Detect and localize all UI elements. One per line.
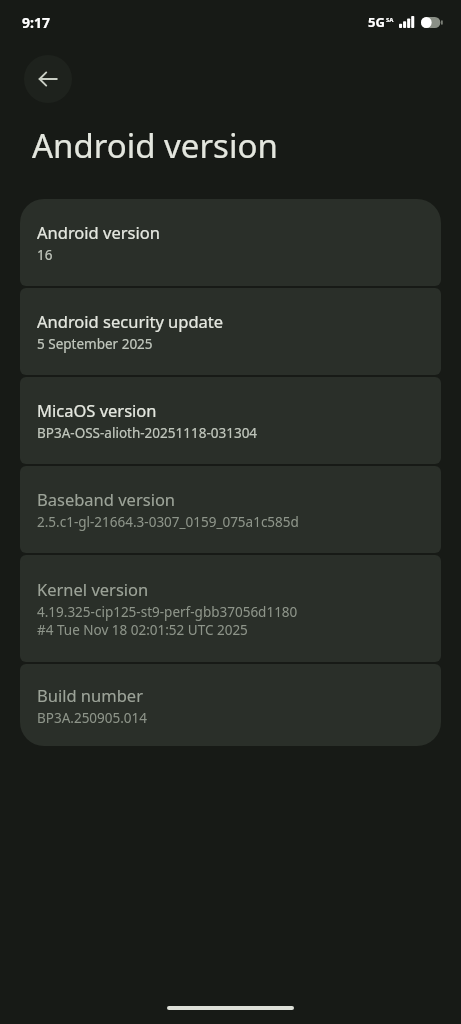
staticText: Android version <box>37 221 160 243</box>
staticText: 4.19.325-cip125-st9-perf-gbb37056d1180 <box>37 603 298 621</box>
button[interactable]: Android version <box>20 199 441 286</box>
staticText: Kernel version <box>37 578 149 600</box>
staticText: Build number <box>37 684 143 706</box>
button[interactable]: Baseband version <box>20 466 441 553</box>
staticText: BP3A-OSS-alioth-20251118-031304 <box>37 424 258 442</box>
staticText: SA <box>386 16 394 24</box>
staticText: #4 Tue Nov 18 02:01:52 UTC 2025 <box>37 621 248 639</box>
staticText: 5 September 2025 <box>37 335 153 353</box>
staticText: 2.5.c1-gl-21664.3-0307_0159_075a1c585d <box>37 513 299 531</box>
staticText: Android version <box>32 123 278 168</box>
staticText: 16 <box>37 246 53 264</box>
button[interactable]: MicaOS version <box>20 377 441 464</box>
staticText: MicaOS version <box>37 399 157 421</box>
staticText: 5G <box>368 13 385 31</box>
staticText: BP3A.250905.014 <box>37 709 148 727</box>
staticText: Android security update <box>37 310 224 332</box>
button[interactable]: Build number <box>20 664 441 746</box>
button[interactable]: Kernel version <box>20 555 441 662</box>
button[interactable]: Android security update <box>20 288 441 375</box>
button[interactable]: Back <box>24 55 72 103</box>
staticText: 9:17 <box>22 13 50 32</box>
staticText: Baseband version <box>37 488 176 510</box>
